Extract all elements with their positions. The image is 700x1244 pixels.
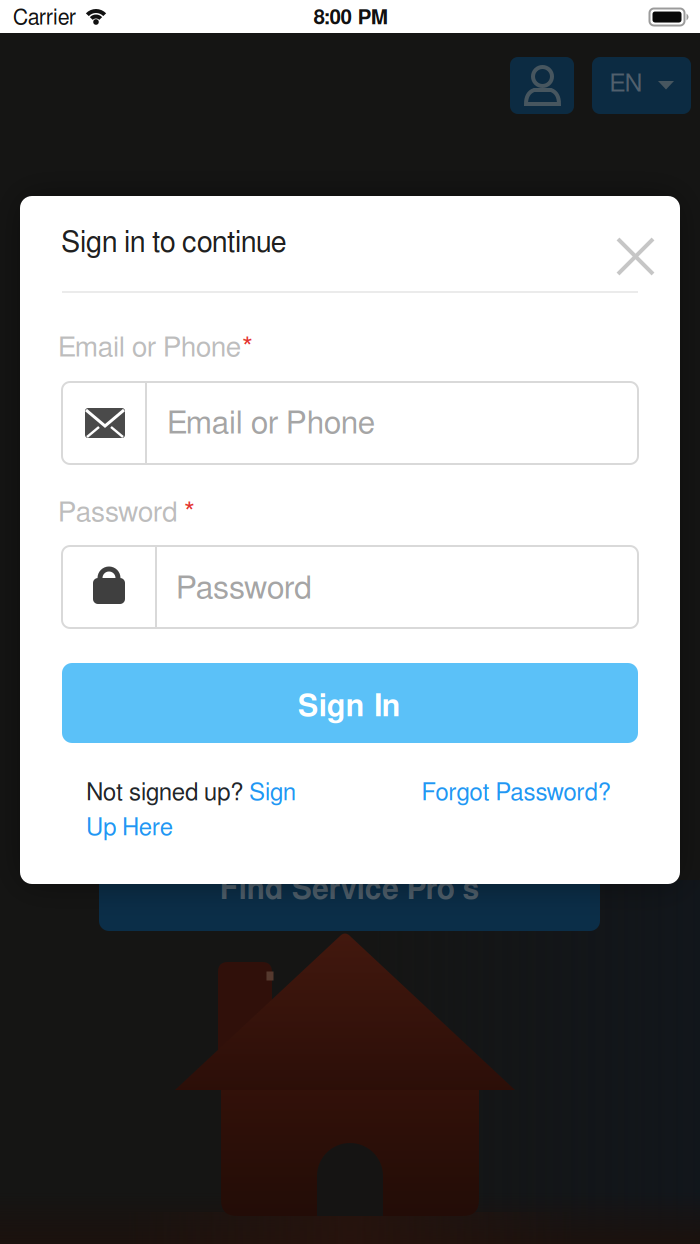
staticText: Up Here (86, 816, 173, 840)
staticText: Password (176, 573, 312, 605)
button[interactable] (99, 867, 600, 931)
staticText: Email or Phone (167, 408, 375, 440)
button[interactable]: Sign (249, 781, 296, 805)
staticText: * (184, 499, 195, 527)
button[interactable] (510, 57, 574, 114)
button[interactable] (62, 546, 638, 628)
staticText: Not signed up? (86, 781, 249, 805)
staticText: Forgot Password? (421, 781, 610, 805)
button[interactable] (62, 663, 638, 743)
staticText: Sign in to continue (61, 229, 286, 258)
button[interactable] (608, 229, 662, 283)
staticText: EN (609, 72, 642, 96)
staticText: 8:00 PM (313, 8, 388, 28)
button[interactable]: Up Here (86, 816, 173, 840)
button[interactable] (592, 57, 691, 114)
staticText: Sign In (297, 692, 400, 722)
button[interactable]: Forgot Password? (421, 781, 610, 805)
staticText: Sign (249, 781, 296, 805)
staticText: Password (58, 499, 178, 527)
staticText: * (242, 334, 253, 362)
staticText: Email or Phone (58, 334, 241, 362)
button[interactable] (62, 382, 638, 464)
staticText: Carrier (13, 7, 76, 29)
staticText: Find Service Pro's (219, 875, 479, 905)
